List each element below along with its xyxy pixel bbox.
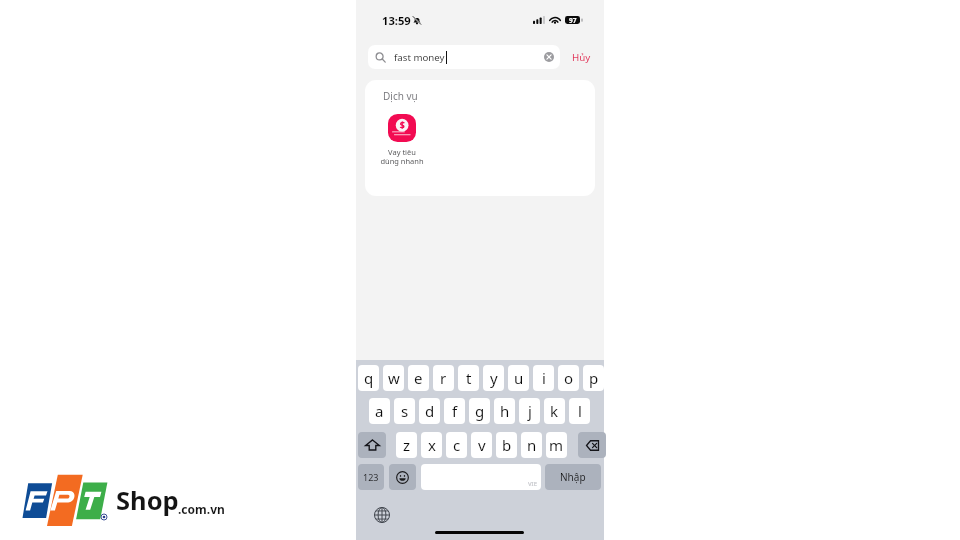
staticText: n — [527, 435, 537, 455]
staticText: e — [414, 368, 423, 388]
button[interactable]: z — [396, 432, 417, 458]
button[interactable]: g — [469, 398, 490, 424]
staticText: r — [440, 368, 447, 388]
staticText: s — [401, 401, 409, 421]
button[interactable]: Space — [421, 464, 541, 490]
staticText: VIE — [528, 480, 537, 488]
button[interactable]: p — [583, 365, 604, 391]
staticText: x — [428, 435, 436, 455]
button[interactable]: c — [446, 432, 467, 458]
staticText: 97 — [569, 16, 577, 24]
staticText: Hủy — [572, 51, 591, 64]
staticText: Vay tiêu dùng nhanh — [380, 147, 424, 166]
button[interactable]: Clear text — [544, 52, 554, 62]
button[interactable]: j — [519, 398, 540, 424]
button[interactable]: w — [383, 365, 404, 391]
staticText: fast money — [394, 51, 445, 64]
button[interactable]: y — [483, 365, 504, 391]
button[interactable]: s — [394, 398, 415, 424]
staticText: u — [514, 368, 524, 388]
staticText: f — [452, 401, 458, 421]
staticText: Nhập — [560, 470, 586, 484]
button[interactable]: b — [496, 432, 517, 458]
button[interactable]: v — [471, 432, 492, 458]
button[interactable]: f — [444, 398, 465, 424]
button[interactable]: Vay tiêu dùng nhanh — [378, 114, 426, 166]
staticText: Shop — [116, 483, 179, 518]
staticText: v — [478, 435, 486, 455]
button[interactable]: r — [433, 365, 454, 391]
staticText: a — [375, 401, 384, 421]
button[interactable]: u — [508, 365, 529, 391]
button[interactable]: x — [421, 432, 442, 458]
staticText: q — [364, 368, 374, 388]
staticText: i — [542, 368, 546, 388]
button[interactable]: Change keyboard — [374, 507, 390, 523]
staticText: p — [589, 368, 599, 388]
staticText: y — [490, 368, 498, 388]
staticText: o — [564, 368, 574, 388]
staticText: j — [528, 401, 532, 421]
staticText: z — [403, 435, 411, 455]
button[interactable]: Shift — [358, 432, 386, 458]
button[interactable]: t — [458, 365, 479, 391]
staticText: m — [549, 435, 564, 455]
staticText: h — [500, 401, 510, 421]
staticText: g — [475, 401, 485, 421]
staticText: 123 — [363, 471, 379, 483]
button[interactable]: q — [358, 365, 379, 391]
button[interactable]: d — [419, 398, 440, 424]
button[interactable]: 123 — [358, 464, 384, 490]
button[interactable]: Backspace — [578, 432, 606, 458]
staticText: .com.vn — [178, 501, 225, 517]
button[interactable]: o — [558, 365, 579, 391]
button[interactable]: h — [494, 398, 515, 424]
button[interactable]: m — [546, 432, 567, 458]
staticText: 13:59 — [382, 13, 411, 28]
button[interactable]: l — [569, 398, 590, 424]
staticText: Dịch vụ — [383, 89, 418, 103]
button[interactable]: Hủy — [568, 48, 595, 67]
button[interactable]: fast money — [368, 45, 560, 69]
staticText: w — [388, 368, 400, 388]
button[interactable]: Nhập — [545, 464, 601, 490]
button[interactable]: n — [521, 432, 542, 458]
button[interactable]: Emoji — [389, 464, 416, 490]
staticText: l — [578, 401, 582, 421]
button[interactable]: e — [408, 365, 429, 391]
staticText: d — [425, 401, 435, 421]
staticText: b — [502, 435, 512, 455]
button[interactable]: i — [533, 365, 554, 391]
button[interactable]: a — [369, 398, 390, 424]
staticText: c — [453, 435, 461, 455]
button[interactable]: k — [544, 398, 565, 424]
staticText: k — [550, 401, 559, 421]
staticText: t — [466, 368, 472, 388]
